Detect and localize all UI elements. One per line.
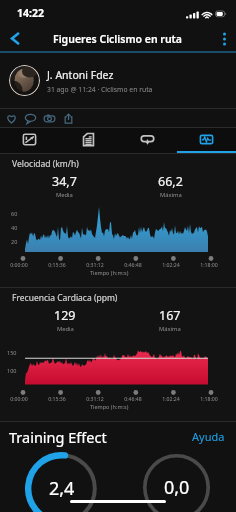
staticText: 1:02:24 (162, 261, 180, 268)
button[interactable]: Laps (118, 128, 177, 153)
staticText: Media (56, 191, 73, 199)
staticText: Tiempo (h:m:s) (90, 403, 129, 410)
staticText: 0:15:36 (48, 261, 66, 268)
button[interactable]: Photos (40, 109, 59, 127)
staticText: 0:00:00 (10, 395, 28, 402)
staticText: 0:46:48 (124, 395, 142, 402)
button[interactable]: More options (212, 26, 236, 51)
staticText: 129 (54, 307, 76, 324)
staticText: 20 (11, 238, 18, 245)
staticText: 40 (11, 224, 18, 231)
staticText: Media (57, 325, 74, 333)
staticText: 34,7 (52, 173, 77, 190)
staticText: Tiempo (h:m:s) (90, 269, 129, 276)
staticText: 1:18:00 (200, 261, 218, 268)
button[interactable]: Map (0, 128, 59, 153)
staticText: 14:22 (17, 6, 44, 20)
staticText: 2,4 (49, 476, 75, 501)
staticText: J. Antoni Fdez (47, 68, 114, 82)
staticText: 0:31:12 (86, 261, 104, 268)
staticText: Frecuencia Cardiaca (ppm) (12, 292, 118, 304)
staticText: Figueres Ciclismo en ruta (53, 32, 183, 46)
staticText: Máxima (160, 191, 182, 199)
button[interactable]: Like (2, 109, 21, 127)
staticText: 31 ago @ 11:24 · Ciclismo en ruta (47, 85, 153, 94)
staticText: 0,0 (164, 475, 190, 500)
staticText: 66,2 (158, 173, 183, 190)
staticText: 0:15:36 (48, 395, 66, 402)
button[interactable]: Comment (21, 109, 40, 127)
staticText: 0:00:00 (10, 261, 28, 268)
button[interactable]: Back (0, 26, 30, 51)
staticText: Ayuda (192, 429, 225, 444)
staticText: 60 (11, 210, 18, 217)
staticText: 0:46:48 (124, 261, 142, 268)
staticText: 167 (159, 307, 181, 324)
staticText: Máxima (159, 325, 181, 333)
button[interactable]: Details (59, 128, 118, 153)
staticText: 1:02:24 (162, 395, 180, 402)
button[interactable]: Ayuda (192, 429, 225, 444)
button[interactable]: Charts (177, 128, 236, 153)
button[interactable]: Share (59, 109, 78, 127)
staticText: Training Effect (9, 427, 107, 447)
staticText: 1:18:00 (200, 395, 218, 402)
staticText: 0:31:12 (86, 395, 104, 402)
staticText: 150 (7, 349, 17, 356)
button[interactable]: J. Antoni Fdez (0, 53, 236, 108)
staticText: 100 (7, 367, 17, 374)
staticText: Velocidad (km/h) (12, 158, 79, 170)
